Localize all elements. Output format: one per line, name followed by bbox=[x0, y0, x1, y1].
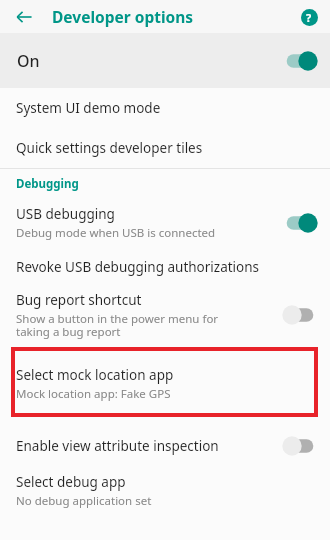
staticText: Bug report shortcut bbox=[16, 291, 142, 309]
staticText: Debugging bbox=[16, 176, 79, 192]
staticText: Debug mode when USB is connected bbox=[16, 225, 216, 241]
button[interactable]: Select mock location app bbox=[16, 366, 174, 402]
staticText: Mock location app: Fake GPS bbox=[16, 386, 171, 402]
staticText: Developer options bbox=[52, 6, 194, 27]
staticText: Revoke USB debugging authorizations bbox=[16, 258, 260, 276]
staticText: On bbox=[17, 50, 40, 72]
button[interactable]: Revoke USB debugging authorizations bbox=[0, 247, 330, 287]
button[interactable]: Toggle off bbox=[282, 435, 318, 457]
staticText: Select mock location app bbox=[16, 366, 174, 384]
staticText: Select debug app bbox=[16, 473, 126, 491]
button[interactable]: Toggle on bbox=[282, 50, 318, 72]
button[interactable]: Back bbox=[8, 1, 40, 33]
staticText: ? bbox=[306, 10, 312, 25]
button[interactable]: Select debug app bbox=[0, 467, 330, 515]
button[interactable]: Enable view attribute inspection bbox=[0, 425, 330, 467]
button[interactable]: Toggle off bbox=[282, 304, 318, 326]
staticText: Show a button in the power menu for taki… bbox=[16, 311, 219, 340]
staticText: Quick settings developer tiles bbox=[16, 139, 203, 157]
button[interactable]: System UI demo mode bbox=[0, 88, 330, 128]
button[interactable]: Toggle on bbox=[282, 212, 318, 234]
staticText: USB debugging bbox=[16, 205, 115, 223]
staticText: System UI demo mode bbox=[16, 99, 161, 117]
button[interactable]: Quick settings developer tiles bbox=[0, 128, 330, 168]
button[interactable]: Bug report shortcut bbox=[0, 287, 330, 343]
button[interactable]: Help bbox=[296, 4, 322, 30]
button[interactable]: On bbox=[0, 33, 330, 88]
staticText: Enable view attribute inspection bbox=[16, 437, 219, 455]
button[interactable]: USB debugging bbox=[0, 199, 330, 247]
staticText: No debug application set bbox=[16, 493, 152, 509]
